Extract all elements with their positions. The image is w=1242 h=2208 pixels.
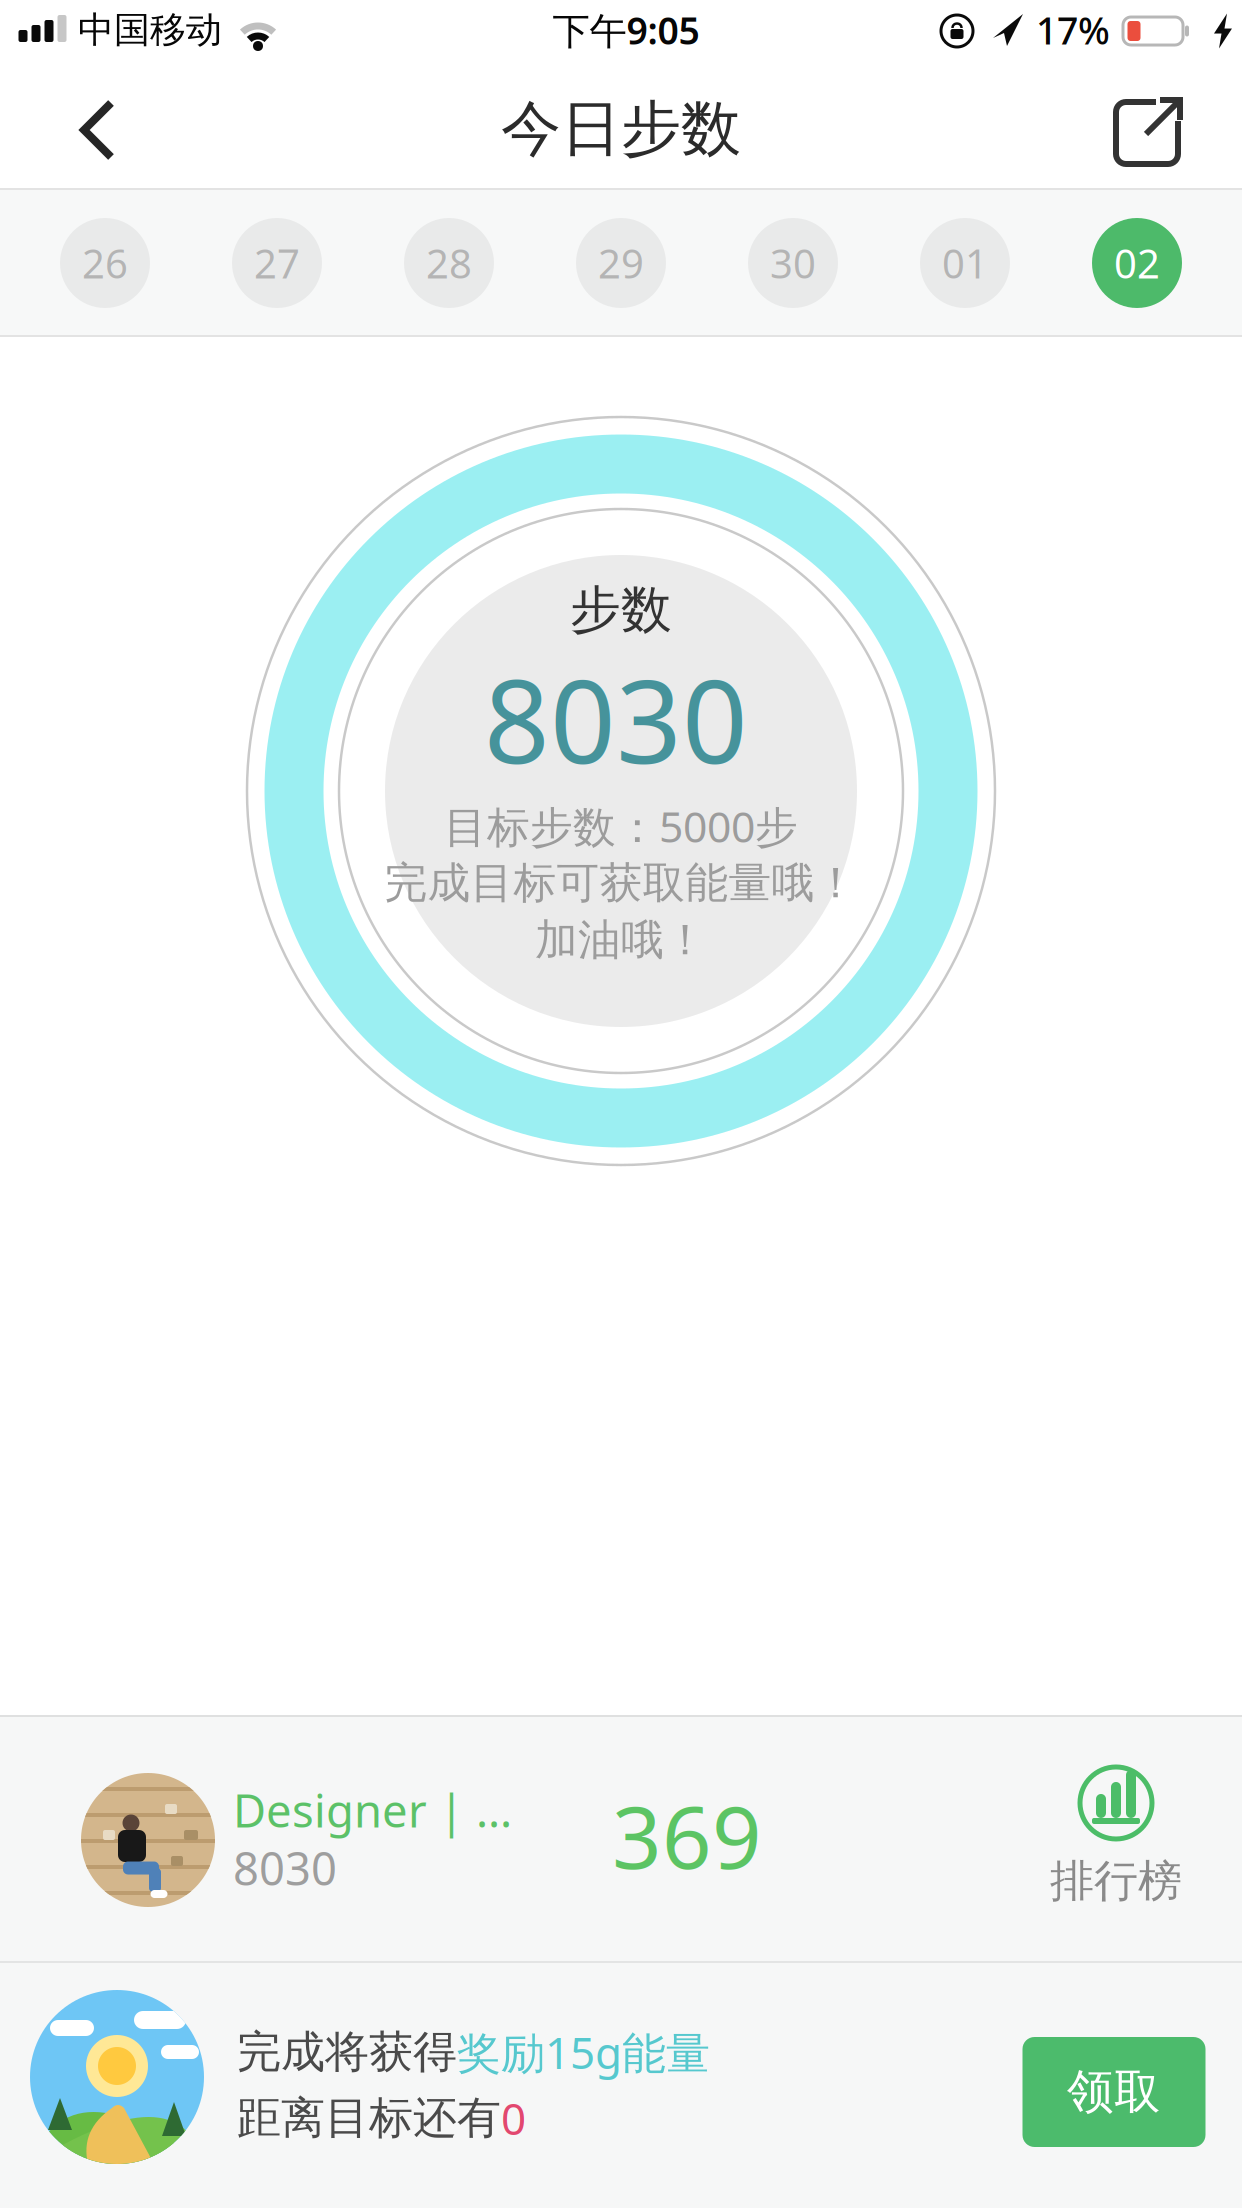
button[interactable]: 02: [1092, 218, 1182, 308]
staticText: 领取: [1067, 2063, 1161, 2121]
button[interactable]: 28: [404, 218, 494, 308]
staticText: 30: [770, 236, 816, 289]
staticText: 中国移动: [78, 8, 222, 52]
staticText: 02: [1114, 236, 1160, 289]
staticText: 369: [612, 1777, 762, 1893]
button[interactable]: 01: [920, 218, 1010, 308]
staticText: 26: [82, 236, 128, 289]
staticText: 今日步数: [501, 92, 741, 166]
staticText: 17%: [1036, 5, 1110, 55]
staticText: 下午9:05: [552, 5, 699, 55]
staticText: 加油哦！: [535, 914, 707, 966]
button[interactable]: 26: [60, 218, 150, 308]
button[interactable]: 排行榜: [1006, 1760, 1226, 1912]
staticText: 8030: [484, 643, 748, 795]
staticText: 步数: [570, 579, 672, 641]
staticText: 29: [598, 236, 644, 289]
staticText: 目标步数：5000步: [444, 798, 798, 854]
staticText: 01: [942, 236, 988, 289]
staticText: 奖励15g能量: [457, 2023, 710, 2081]
staticText: 28: [426, 236, 472, 289]
button[interactable]: 29: [576, 218, 666, 308]
staticText: 排行榜: [1050, 1854, 1182, 1908]
staticText: 完成目标可获取能量哦！: [384, 857, 857, 909]
staticText: 27: [254, 236, 300, 289]
staticText: 0: [501, 2089, 526, 2147]
button[interactable]: 27: [232, 218, 322, 308]
button[interactable]: Back: [77, 95, 133, 165]
staticText: 8030: [233, 1838, 337, 1898]
button[interactable]: 领取: [1022, 2037, 1205, 2147]
staticText: 完成将获得: [237, 2025, 457, 2079]
button[interactable]: 30: [748, 218, 838, 308]
button[interactable]: Share: [1113, 95, 1185, 167]
staticText: 距离目标还有: [237, 2091, 501, 2145]
staticText: Designer | ...: [233, 1780, 512, 1840]
